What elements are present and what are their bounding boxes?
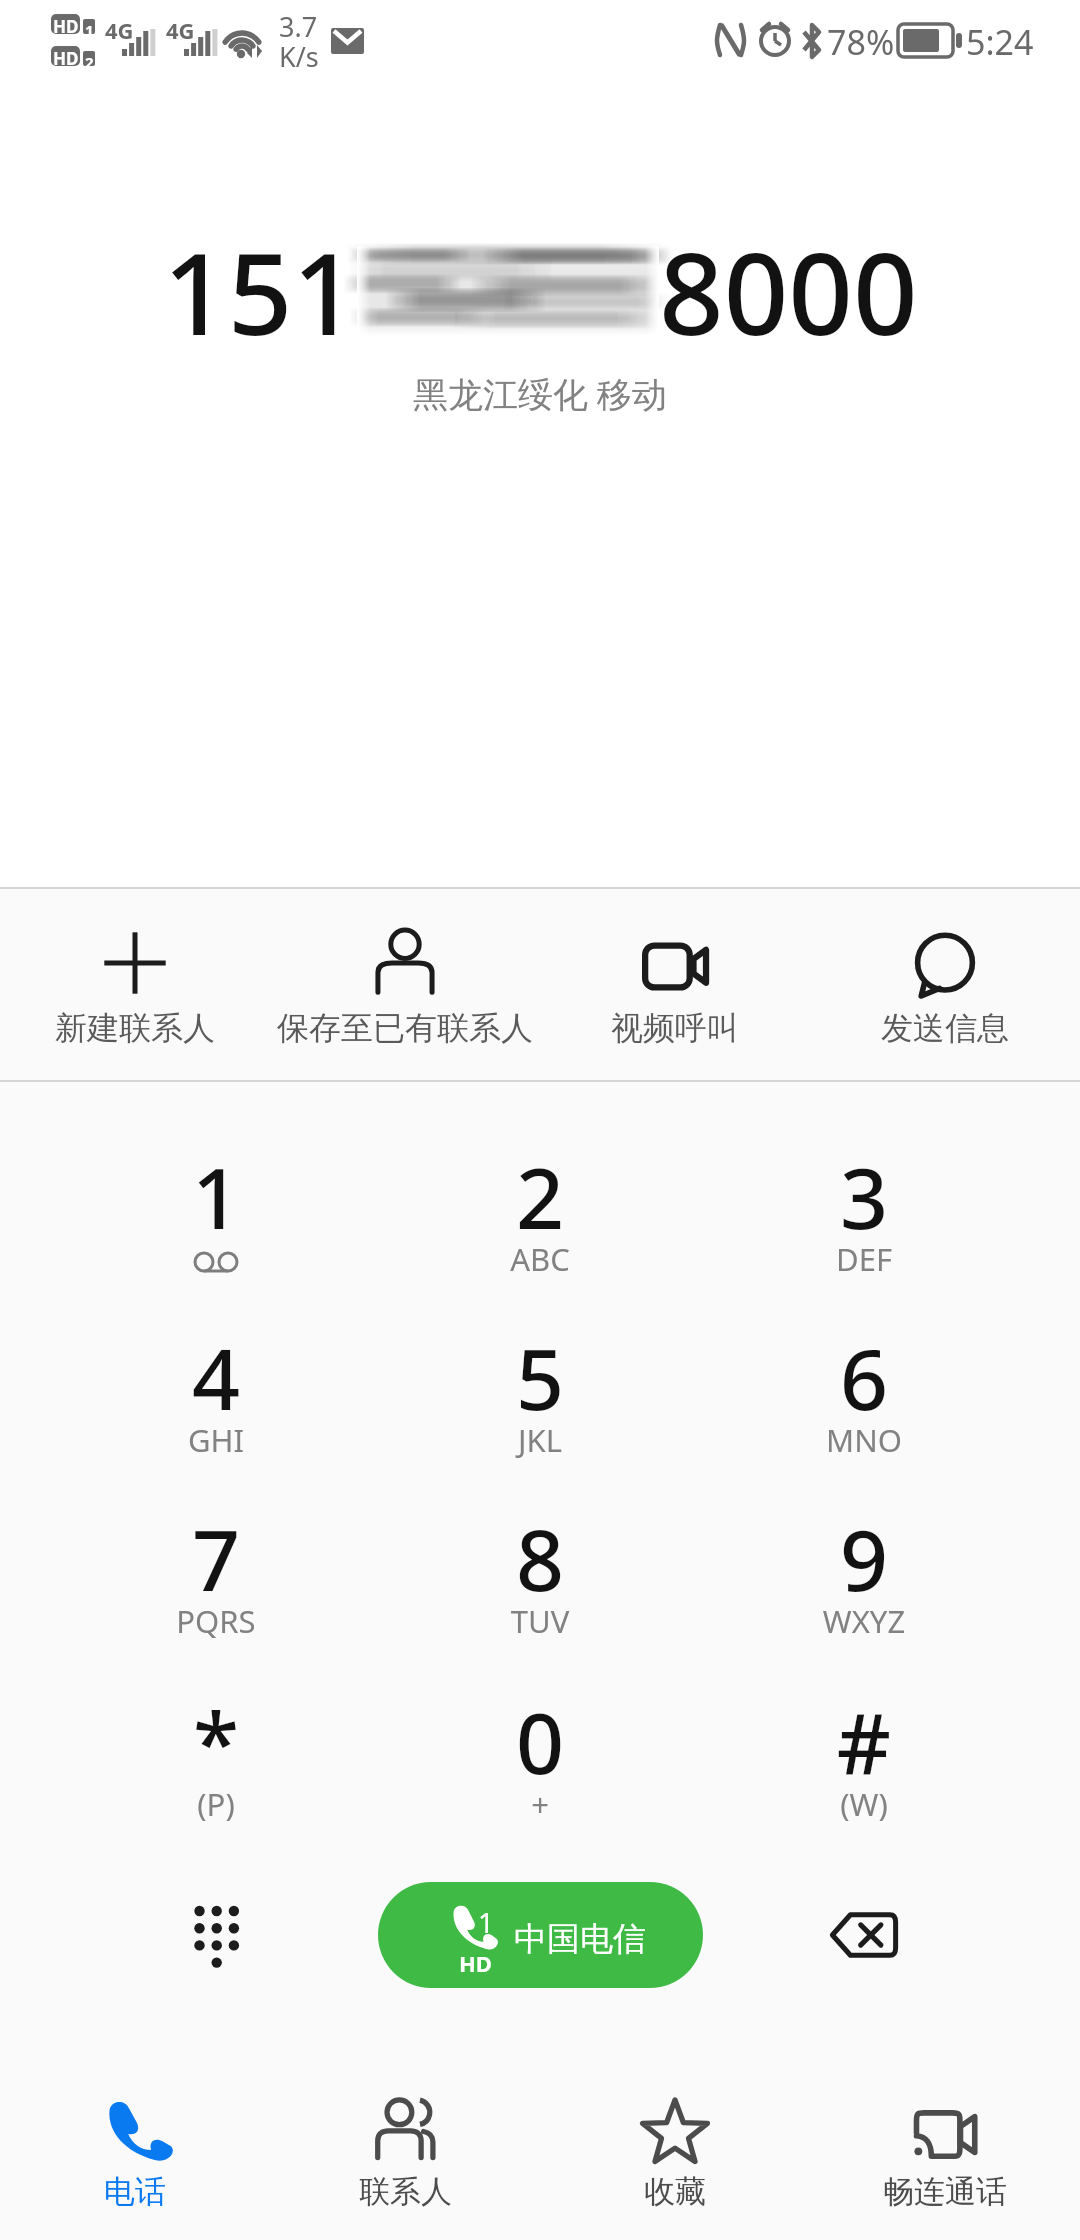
staticText: 0 <box>378 1684 702 1798</box>
button[interactable]: 1 <box>54 1119 378 1300</box>
button[interactable]: 2 <box>378 1119 702 1300</box>
staticText: MNO <box>702 1419 1026 1461</box>
staticText: 4G <box>166 15 195 45</box>
staticText: WXYZ <box>702 1600 1026 1642</box>
staticText: 6 <box>702 1320 1026 1434</box>
staticText: K/s <box>279 38 319 75</box>
button[interactable]: 3 <box>702 1119 1026 1300</box>
staticText: 5:24 <box>966 19 1034 65</box>
button[interactable]: 4 <box>54 1300 378 1481</box>
staticText: 电话 <box>104 2172 166 2211</box>
staticText: 7 <box>54 1501 378 1615</box>
button[interactable]: 8 <box>378 1481 702 1662</box>
staticText: + <box>378 1783 702 1825</box>
button[interactable]: 联系人 <box>270 2060 540 2240</box>
staticText: 4 <box>54 1320 378 1434</box>
staticText: ABC <box>378 1238 702 1280</box>
staticText: 发送信息 <box>881 1008 1009 1048</box>
staticText: PQRS <box>54 1600 378 1642</box>
staticText: HD <box>53 47 79 70</box>
staticText: 3.7 <box>279 8 318 45</box>
staticText: GHI <box>54 1419 378 1461</box>
staticText: DEF <box>702 1238 1026 1280</box>
button[interactable]: 9 <box>702 1481 1026 1662</box>
button[interactable]: 收藏 <box>540 2060 810 2240</box>
staticText: 2 <box>378 1139 702 1253</box>
button[interactable]: Hide keypad <box>146 1858 286 2018</box>
button[interactable]: # <box>702 1662 1026 1843</box>
button[interactable]: 7 <box>54 1481 378 1662</box>
staticText: HD <box>459 1948 492 1978</box>
staticText: 151 <box>163 214 357 368</box>
staticText: (P) <box>54 1783 378 1825</box>
staticText: 4G <box>105 15 134 45</box>
staticText: 5 <box>378 1320 702 1434</box>
button[interactable]: Backspace <box>794 1858 934 2018</box>
staticText: 8000 <box>659 214 918 368</box>
staticText: (W) <box>702 1783 1026 1825</box>
button[interactable]: 5 <box>378 1300 702 1481</box>
staticText: # <box>702 1684 1026 1798</box>
button[interactable]: 保存至已有联系人 <box>270 889 540 1080</box>
button[interactable]: 视频呼叫 <box>540 889 810 1080</box>
staticText: 联系人 <box>359 2172 452 2211</box>
staticText: 3 <box>702 1139 1026 1253</box>
staticText: 1 <box>54 1139 378 1253</box>
staticText: 新建联系人 <box>55 1008 215 1048</box>
staticText: 78% <box>827 19 895 65</box>
staticText: 收藏 <box>644 2172 706 2211</box>
staticText: 9 <box>702 1501 1026 1615</box>
staticText: 1 <box>85 20 94 40</box>
staticText: 畅连通话 <box>883 2172 1007 2211</box>
staticText: * <box>54 1684 378 1798</box>
staticText: 中国电信 <box>514 1918 646 1960</box>
staticText: JKL <box>378 1419 702 1461</box>
button[interactable]: 新建联系人 <box>0 889 270 1080</box>
button[interactable]: 畅连通话 <box>810 2060 1080 2240</box>
staticText: 黑龙江绥化 移动 <box>413 370 668 418</box>
button[interactable]: 发送信息 <box>810 889 1080 1080</box>
button[interactable]: 1 <box>378 1882 703 1988</box>
button[interactable]: * <box>54 1662 378 1843</box>
staticText: HD <box>53 15 79 38</box>
button[interactable]: 6 <box>702 1300 1026 1481</box>
staticText: TUV <box>378 1600 702 1642</box>
staticText: 8 <box>378 1501 702 1615</box>
staticText: 2 <box>85 52 94 72</box>
button[interactable]: 0 <box>378 1662 702 1843</box>
staticText: 保存至已有联系人 <box>277 1008 533 1048</box>
staticText: 视频呼叫 <box>611 1008 739 1048</box>
staticText: 1 <box>478 1903 495 1941</box>
button[interactable]: 电话 <box>0 2060 270 2240</box>
